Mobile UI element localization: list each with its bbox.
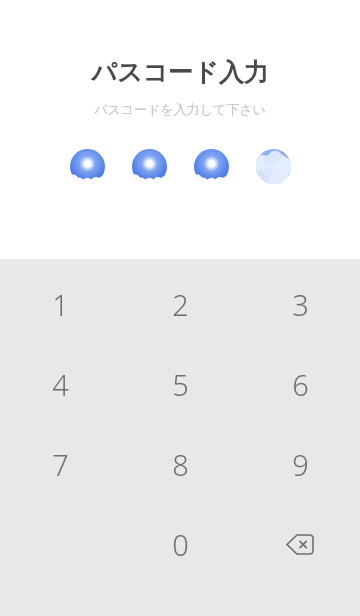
staticText: パスコードを入力して下さい [94, 101, 266, 117]
staticText: 0 [172, 525, 189, 564]
staticText: 7 [52, 445, 69, 484]
staticText: 2 [172, 285, 189, 324]
button[interactable]: 0 [120, 504, 240, 584]
button[interactable]: 2 [120, 264, 240, 344]
staticText: 1 [52, 285, 69, 324]
button[interactable]: 6 [240, 344, 360, 424]
button[interactable]: 1 [0, 264, 120, 344]
button[interactable]: 9 [240, 424, 360, 504]
button[interactable]: Backspace [240, 504, 360, 584]
staticText: 4 [52, 365, 69, 404]
staticText: 8 [172, 445, 189, 484]
staticText: 5 [172, 365, 189, 404]
button[interactable]: 7 [0, 424, 120, 504]
staticText: 3 [292, 285, 309, 324]
staticText: 6 [292, 365, 309, 404]
staticText: 9 [292, 445, 309, 484]
button[interactable]: 8 [120, 424, 240, 504]
button[interactable]: 5 [120, 344, 240, 424]
staticText: パスコード入力 [91, 57, 269, 88]
button[interactable]: 3 [240, 264, 360, 344]
button[interactable]: 4 [0, 344, 120, 424]
